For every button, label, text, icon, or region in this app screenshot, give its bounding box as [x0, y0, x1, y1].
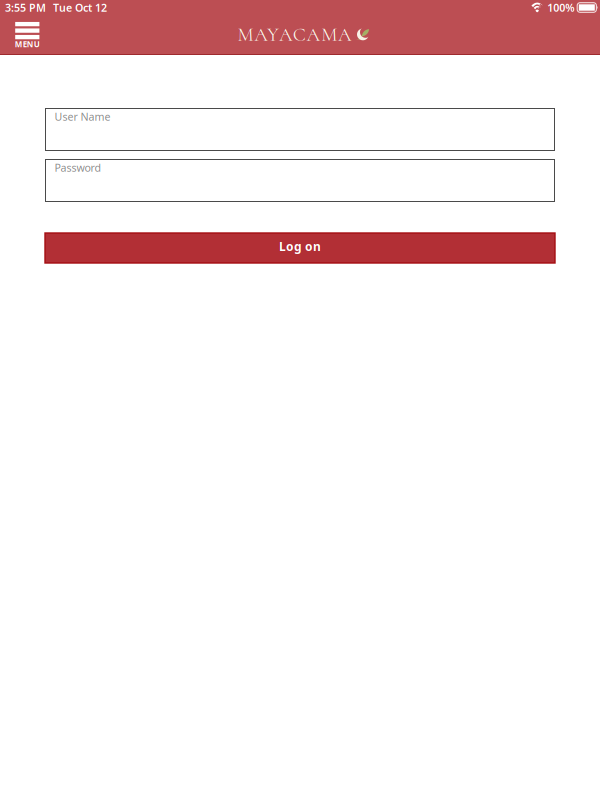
button[interactable]: Password — [45, 159, 555, 202]
staticText: 3:55 PM — [5, 0, 46, 15]
button[interactable]: User Name — [45, 108, 555, 151]
staticText: User Name — [54, 109, 110, 124]
button[interactable]: Log on — [45, 233, 555, 263]
staticText: MENU — [15, 39, 40, 49]
staticText: Tue Oct 12 — [53, 0, 107, 15]
staticText: Log on — [279, 238, 321, 254]
button[interactable]: Menu — [8, 15, 46, 54]
staticText: Password — [54, 160, 101, 175]
staticText: MAYACAMA — [237, 23, 352, 46]
staticText: 100% — [547, 0, 574, 15]
